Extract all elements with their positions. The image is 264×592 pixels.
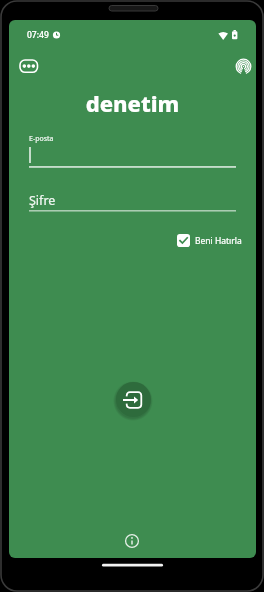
button[interactable]: E-posta <box>27 132 237 170</box>
button[interactable] <box>116 382 151 417</box>
staticText: denetim <box>9 88 256 118</box>
button[interactable] <box>122 531 142 551</box>
staticText: E-posta <box>29 134 54 144</box>
staticText: Şifre <box>29 192 56 209</box>
button[interactable]: Beni Hatırla <box>177 234 242 247</box>
staticText: 07:49 <box>27 29 49 41</box>
button[interactable]: Şifre <box>27 190 237 216</box>
staticText: Beni Hatırla <box>195 235 242 247</box>
